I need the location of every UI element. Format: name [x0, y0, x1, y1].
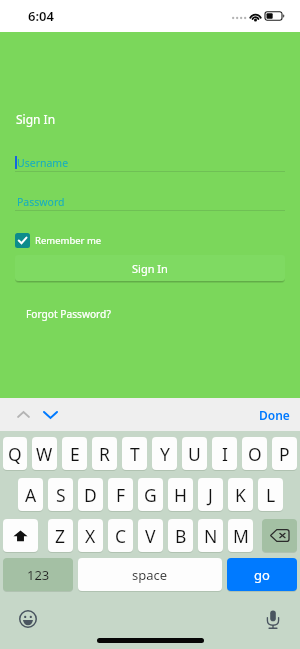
staticText: V: [145, 524, 156, 548]
staticText: Done: [259, 407, 290, 423]
button[interactable]: W: [32, 437, 57, 470]
button[interactable]: Shift: [3, 519, 38, 552]
staticText: X: [85, 524, 96, 548]
button[interactable]: Sign In: [15, 255, 285, 281]
button[interactable]: J: [198, 478, 223, 511]
button[interactable]: F: [108, 478, 133, 511]
staticText: Sign In: [132, 261, 168, 276]
staticText: L: [266, 483, 276, 507]
staticText: K: [235, 483, 246, 507]
staticText: go: [254, 566, 270, 584]
button[interactable]: 123: [3, 558, 73, 591]
button[interactable]: N: [198, 519, 223, 552]
staticText: Username: [17, 156, 69, 170]
staticText: C: [115, 524, 127, 548]
staticText: I: [222, 442, 228, 466]
staticText: J: [208, 483, 213, 507]
button[interactable]: G: [138, 478, 163, 511]
button[interactable]: Next field: [37, 402, 64, 427]
button[interactable]: space: [78, 558, 222, 591]
staticText: 6:04: [28, 7, 54, 25]
staticText: U: [188, 442, 201, 466]
staticText: Z: [55, 524, 66, 548]
staticText: Y: [160, 442, 170, 466]
button[interactable]: M: [228, 519, 253, 552]
staticText: H: [174, 483, 187, 507]
button[interactable]: A: [18, 478, 43, 511]
button[interactable]: Forgot Password?: [26, 307, 111, 321]
button[interactable]: Z: [48, 519, 73, 552]
staticText: T: [130, 442, 140, 466]
button[interactable]: P: [272, 437, 297, 470]
staticText: Q: [8, 442, 22, 466]
staticText: F: [116, 483, 126, 507]
button[interactable]: L: [258, 478, 283, 511]
button[interactable]: O: [242, 437, 267, 470]
button[interactable]: E: [62, 437, 87, 470]
staticText: A: [25, 483, 37, 507]
staticText: D: [84, 483, 97, 507]
staticText: P: [279, 442, 290, 466]
staticText: W: [36, 442, 53, 466]
button[interactable]: S: [48, 478, 73, 511]
staticText: S: [56, 483, 66, 507]
button[interactable]: Remember me: [15, 232, 102, 249]
button[interactable]: Emoji: [12, 605, 44, 633]
button[interactable]: Done: [259, 407, 290, 423]
staticText: E: [70, 442, 80, 466]
button[interactable]: T: [122, 437, 147, 470]
button[interactable]: K: [228, 478, 253, 511]
button[interactable]: C: [108, 519, 133, 552]
button[interactable]: I: [212, 437, 237, 470]
staticText: Forgot Password?: [26, 307, 111, 321]
staticText: Password: [17, 195, 65, 209]
button[interactable]: Q: [3, 437, 27, 470]
button[interactable]: U: [182, 437, 207, 470]
button[interactable]: X: [78, 519, 103, 552]
button[interactable]: B: [168, 519, 193, 552]
staticText: Remember me: [35, 234, 102, 247]
staticText: M: [233, 524, 249, 548]
staticText: G: [144, 483, 157, 507]
button[interactable]: Y: [152, 437, 177, 470]
button[interactable]: H: [168, 478, 193, 511]
button[interactable]: Backspace: [262, 519, 297, 552]
staticText: B: [175, 524, 187, 548]
button[interactable]: go: [227, 558, 297, 591]
button[interactable]: Previous field: [10, 402, 36, 427]
button[interactable]: V: [138, 519, 163, 552]
staticText: Sign In: [16, 111, 56, 127]
button[interactable]: D: [78, 478, 103, 511]
staticText: O: [248, 442, 262, 466]
button[interactable]: R: [92, 437, 117, 470]
staticText: R: [99, 442, 110, 466]
staticText: 123: [27, 566, 50, 584]
staticText: N: [204, 524, 218, 548]
staticText: space: [132, 566, 168, 584]
button[interactable]: Dictation: [258, 605, 288, 633]
